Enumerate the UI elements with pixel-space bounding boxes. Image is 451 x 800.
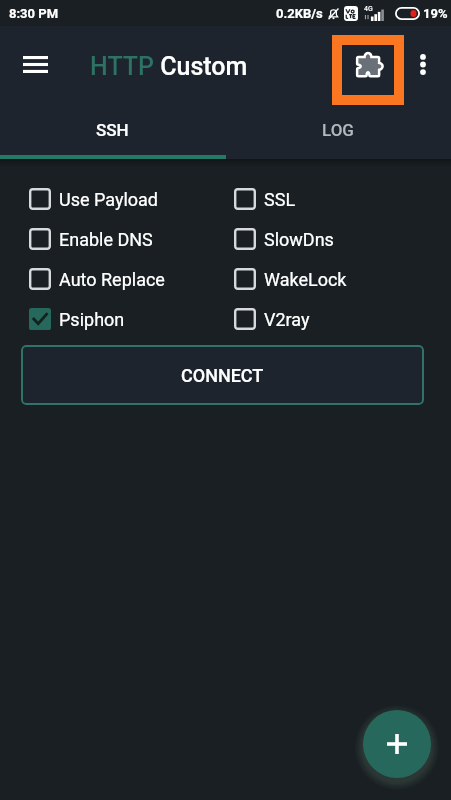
button[interactable]: Enable DNS (29, 219, 204, 259)
staticText: HTTP Custom (90, 52, 248, 81)
staticText: SSH (96, 120, 129, 140)
button[interactable]: Psiphon (29, 299, 204, 339)
button[interactable]: V2ray (234, 299, 394, 339)
button[interactable]: Auto Replace (29, 259, 204, 299)
button[interactable]: SSL (234, 179, 394, 219)
button[interactable]: Add configuration (363, 710, 431, 778)
button[interactable]: Extensions (342, 45, 394, 95)
staticText: SSL (264, 189, 296, 210)
staticText: 8:30 PM (9, 6, 59, 21)
button[interactable]: SSH (0, 105, 225, 154)
staticText: CONNECT (181, 365, 264, 386)
button[interactable]: LOG (225, 105, 451, 154)
button[interactable]: Navigation menu (11, 40, 59, 88)
staticText: 19% (423, 6, 448, 21)
staticText: WakeLock (264, 269, 347, 290)
staticText: Enable DNS (59, 229, 153, 250)
staticText: Auto Replace (59, 269, 165, 290)
staticText: SlowDns (264, 229, 334, 250)
button[interactable]: More options (403, 42, 443, 86)
button[interactable]: CONNECT (21, 345, 424, 405)
staticText: 4G (364, 5, 373, 13)
staticText: V2ray (264, 309, 310, 330)
button[interactable]: WakeLock (234, 259, 394, 299)
button[interactable]: SlowDns (234, 219, 394, 259)
staticText: Use Payload (59, 189, 158, 210)
button[interactable]: Use Payload (29, 179, 204, 219)
staticText: LOG (322, 120, 354, 140)
staticText: Psiphon (59, 309, 125, 330)
staticText: 0.2KB/s (276, 6, 323, 21)
